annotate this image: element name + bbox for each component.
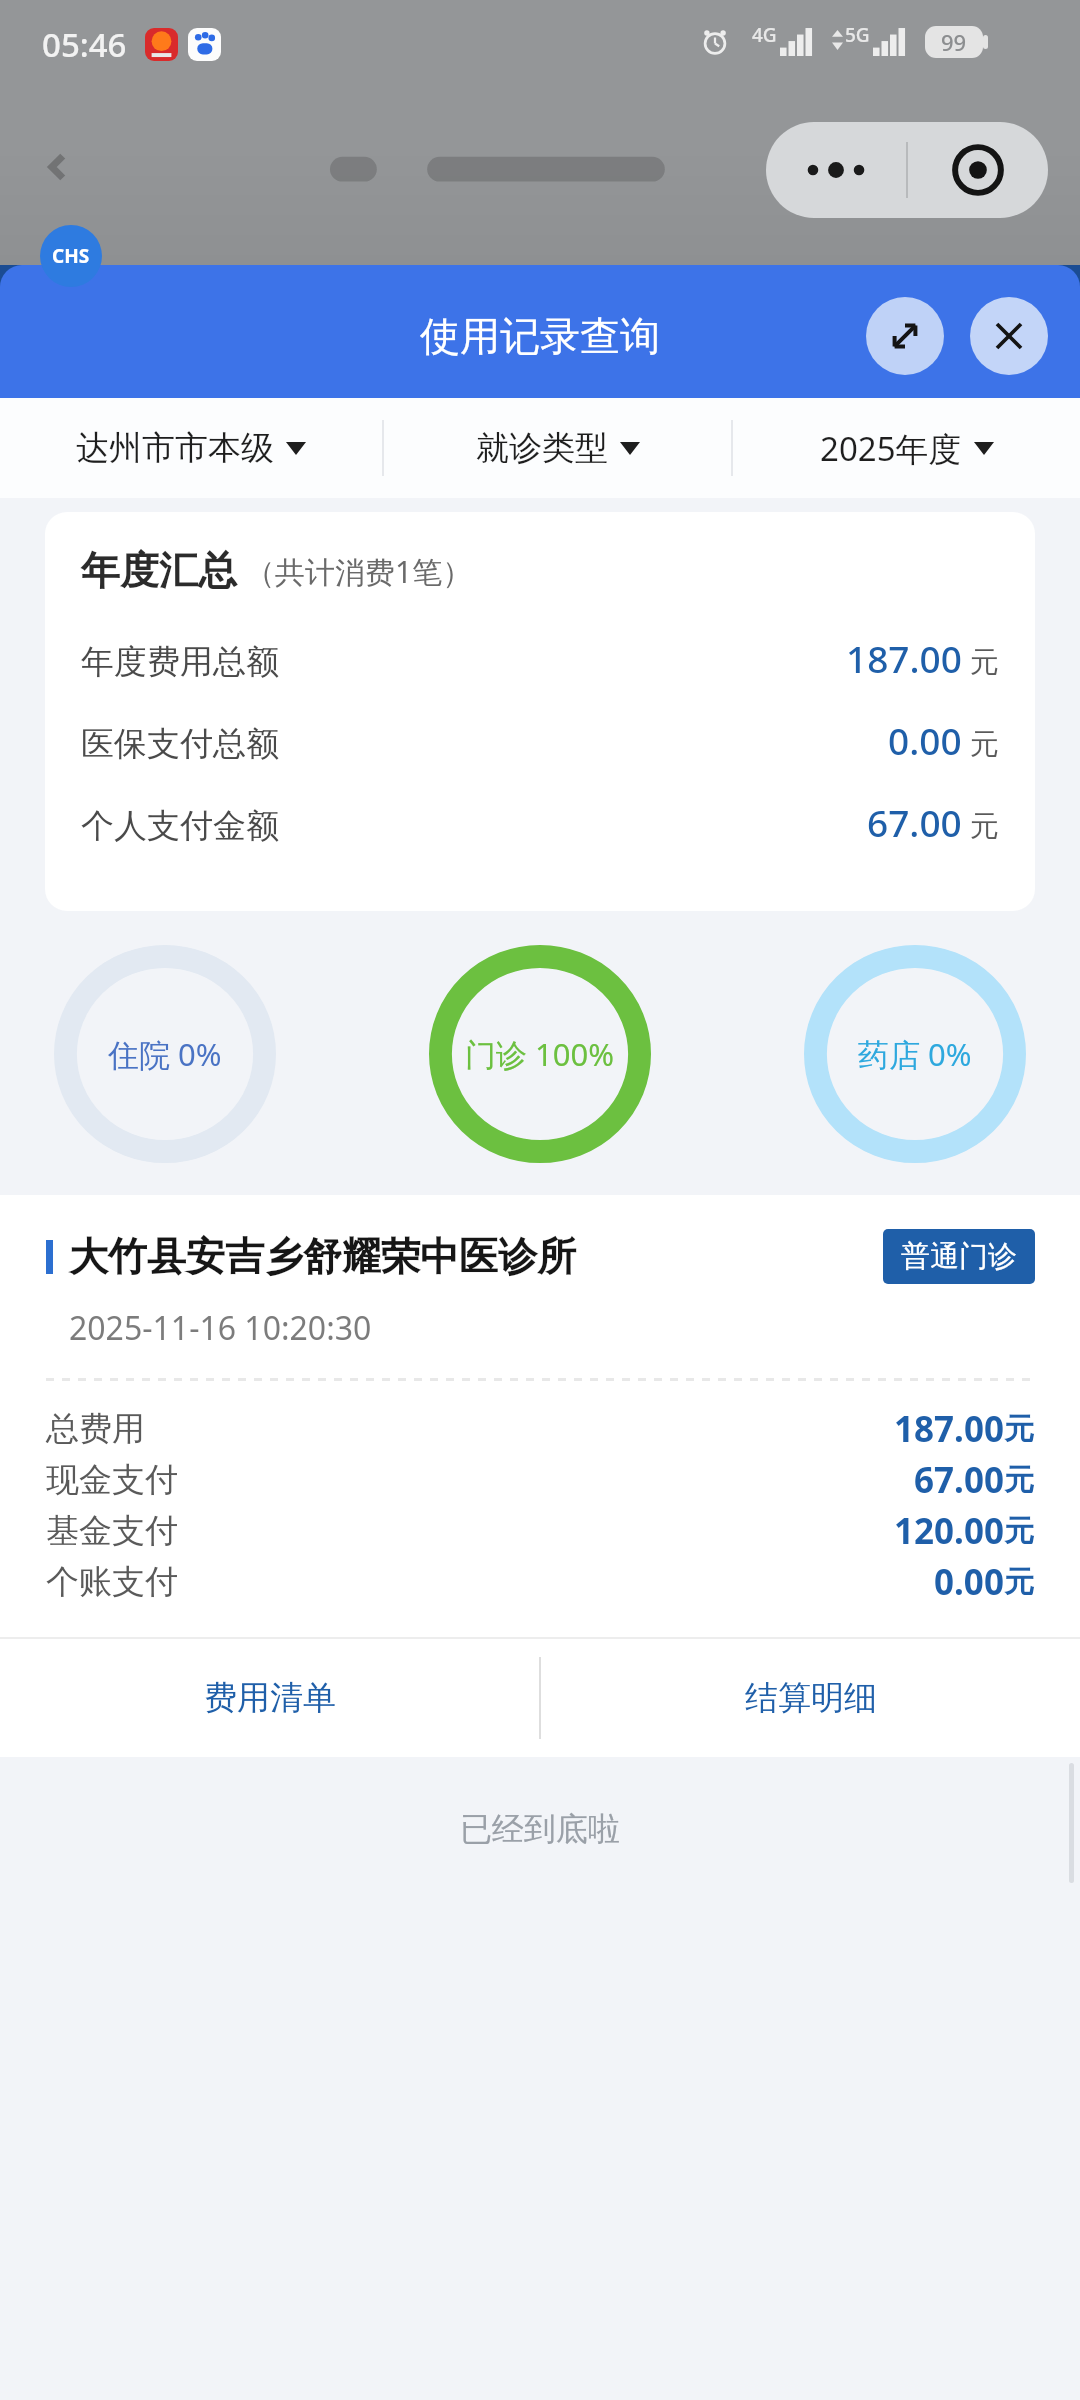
staticText: CHS [52,243,90,269]
button[interactable]: 2025年度 [733,398,1080,498]
staticText: 基金支付 [46,1510,178,1552]
staticText: 元 [970,726,999,763]
staticText: 元 [1004,1563,1034,1601]
staticText: 住院 0% [108,1033,222,1075]
button[interactable]: More [766,122,906,218]
staticText: 总费用 [46,1408,145,1450]
staticText: 就诊类型 [476,427,608,469]
staticText: 187.00 [894,1405,1004,1453]
staticText: 元 [1004,1461,1034,1499]
staticText: 普通门诊 [901,1238,1017,1275]
staticText: 元 [1004,1410,1034,1448]
staticText: 医保支付总额 [81,723,279,765]
button[interactable]: 就诊类型 [384,398,731,498]
button[interactable]: 普通门诊 [883,1229,1035,1284]
button[interactable]: 住院 0% [40,939,290,1169]
staticText: 0.00 [934,1558,1004,1606]
staticText: 05:46 [42,22,127,67]
staticText: 元 [970,808,999,845]
staticText: 67.00 [867,797,962,847]
button[interactable]: Close mini program [908,122,1048,218]
staticText: 5G [845,22,870,48]
staticText: 现金支付 [46,1459,178,1501]
staticText: 2025年度 [820,426,962,471]
staticText: （共计消费1笔） [245,551,473,592]
staticText: 大竹县安吉乡舒耀荣中医诊所 [69,1232,576,1281]
staticText: 年度汇总 [81,546,237,595]
staticText: 187.00 [846,633,962,683]
staticText: 99 [941,27,967,57]
staticText: 元 [970,644,999,681]
staticText: 个人支付金额 [81,805,279,847]
staticText: 0.00 [888,715,962,765]
staticText: 年度费用总额 [81,641,279,683]
staticText: 元 [1004,1512,1034,1550]
staticText: 药店 0% [858,1033,972,1075]
staticText: 结算明细 [745,1677,877,1719]
staticText: 120.00 [894,1507,1004,1555]
staticText: 门诊 100% [465,1033,615,1075]
button[interactable]: Close [970,297,1048,375]
staticText: 达州市市本级 [76,427,274,469]
staticText: 2025-11-16 10:20:30 [69,1306,372,1350]
staticText: 费用清单 [204,1677,336,1719]
button[interactable]: Expand [866,297,944,375]
staticText: 个账支付 [46,1561,178,1603]
staticText: 使用记录查询 [420,311,660,361]
button[interactable]: 达州市市本级 [0,398,382,498]
button[interactable]: 结算明细 [541,1639,1080,1757]
staticText: 已经到底啦 [460,1809,620,1849]
button[interactable]: 费用清单 [0,1639,539,1757]
button[interactable]: 门诊 100% [415,939,665,1169]
staticText: 4G [752,22,777,48]
staticText: 67.00 [914,1456,1004,1504]
button[interactable]: 药店 0% [790,939,1040,1169]
